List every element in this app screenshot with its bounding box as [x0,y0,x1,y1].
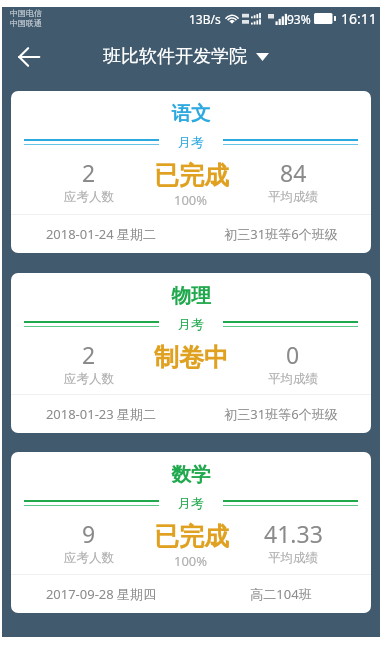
staticText: 16:11 [341,9,377,28]
staticText: 初三31班等6个班级 [191,405,371,423]
staticText: 语文 [11,101,371,126]
staticText: 中国电信 [10,8,42,18]
button[interactable]: 数学 [11,452,371,613]
staticText: 班比软件开发学院 [103,45,247,68]
staticText: 物理 [11,283,371,308]
staticText: 已完成 [154,160,229,191]
staticText: 2017-09-28 星期四 [11,585,191,603]
staticText: 中国联通 [10,18,42,28]
button[interactable]: 物理 [11,273,371,433]
staticText: 月考 [178,495,204,511]
staticText: 13B/s [189,11,221,27]
staticText: 应考人数 [64,371,114,387]
staticText: 月考 [178,134,204,150]
staticText: 93% [287,11,311,27]
button[interactable]: 班比软件开发学院 [97,41,275,72]
staticText: 平均成绩 [268,550,318,566]
button[interactable]: Back [2,30,56,84]
staticText: 平均成绩 [268,371,318,387]
staticText: 制卷中 [154,342,229,373]
staticText: 高二104班 [191,585,371,603]
staticText: 应考人数 [64,189,114,205]
button[interactable]: 语文 [11,91,371,253]
staticText: 41.33 [264,518,323,549]
staticText: 84 [280,157,307,188]
staticText: 100% [174,552,208,570]
staticText: 月考 [178,316,204,332]
staticText: 0 [286,339,300,370]
staticText: 初三31班等6个班级 [191,225,371,243]
staticText: 平均成绩 [268,189,318,205]
staticText: 已完成 [154,521,229,552]
staticText: 2 [82,339,96,370]
staticText: 2018-01-24 星期二 [11,225,191,243]
staticText: 100% [174,191,208,209]
staticText: 2 [82,157,96,188]
staticText: 9 [82,518,96,549]
staticText: 2018-01-23 星期二 [11,405,191,423]
staticText: 数学 [11,462,371,487]
staticText: 应考人数 [64,550,114,566]
